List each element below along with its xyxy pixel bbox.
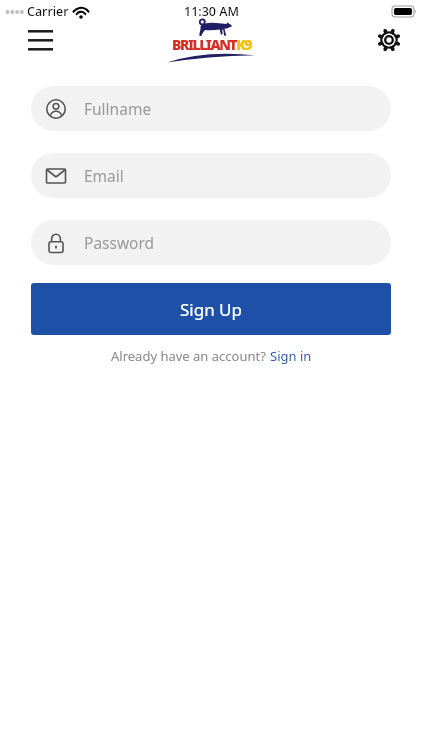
staticText: Carrier (27, 3, 69, 20)
staticText: Already have an account? (111, 347, 270, 365)
button[interactable]: Sign in (270, 347, 312, 365)
button[interactable] (370, 23, 408, 57)
staticText: Email (84, 165, 124, 186)
staticText: Password (84, 232, 155, 253)
button[interactable]: Fullname (31, 86, 391, 131)
button[interactable]: Password (31, 220, 391, 265)
staticText: Fullname (84, 98, 152, 119)
button[interactable] (21, 23, 59, 57)
staticText: Sign in (270, 347, 312, 365)
staticText: Sign Up (180, 298, 242, 321)
button[interactable]: Email (31, 153, 391, 198)
staticText: BRILLIANTK9 (172, 35, 251, 54)
button[interactable]: Sign Up (31, 283, 391, 335)
staticText: 11:30 AM (184, 3, 239, 20)
